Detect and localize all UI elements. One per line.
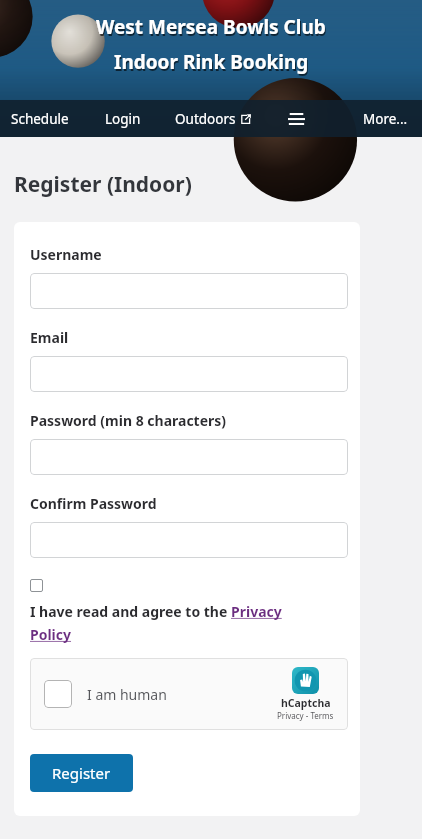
staticText: Outdoors xyxy=(175,110,236,128)
staticText: hCaptcha xyxy=(281,696,331,710)
button[interactable]: Text field xyxy=(30,522,348,558)
staticText: Register xyxy=(52,763,111,783)
staticText: West Mersea Bowls Club xyxy=(97,16,327,42)
staticText: Indoor Rink Booking xyxy=(115,51,310,77)
staticText: Privacy - Terms xyxy=(277,710,334,721)
staticText: Indoor Rink Booking xyxy=(114,49,309,75)
button[interactable]: Login xyxy=(105,110,141,128)
staticText: I am human xyxy=(87,685,167,704)
staticText: West Mersea Bowls Club xyxy=(96,14,326,40)
button[interactable]: Text field xyxy=(30,356,348,392)
button[interactable]: Schedule xyxy=(11,110,69,128)
button[interactable]: Register xyxy=(30,754,133,792)
staticText: Login xyxy=(105,110,141,128)
staticText: Privacy xyxy=(231,602,282,621)
button[interactable]: More... xyxy=(363,110,408,128)
staticText: Schedule xyxy=(11,110,69,128)
button[interactable]: Agree to privacy policy xyxy=(30,579,43,592)
staticText: Confirm Password xyxy=(30,494,157,513)
other: I am human checkbox xyxy=(44,680,72,708)
button[interactable]: Text field xyxy=(30,273,348,309)
staticText: More... xyxy=(363,110,408,128)
staticText: Email xyxy=(30,328,69,347)
button[interactable]: Outdoors xyxy=(175,110,251,128)
staticText: Register (Indoor) xyxy=(14,170,192,199)
staticText: Password (min 8 characters) xyxy=(30,411,227,430)
button[interactable]: I have read and agree to the xyxy=(30,602,282,644)
button[interactable]: Menu xyxy=(283,106,309,132)
button[interactable]: Text field xyxy=(30,439,348,475)
staticText: Policy xyxy=(30,625,72,644)
button[interactable]: I am human checkbox xyxy=(30,658,348,730)
staticText: Username xyxy=(30,245,102,264)
staticText: I have read and agree to the xyxy=(30,602,231,621)
